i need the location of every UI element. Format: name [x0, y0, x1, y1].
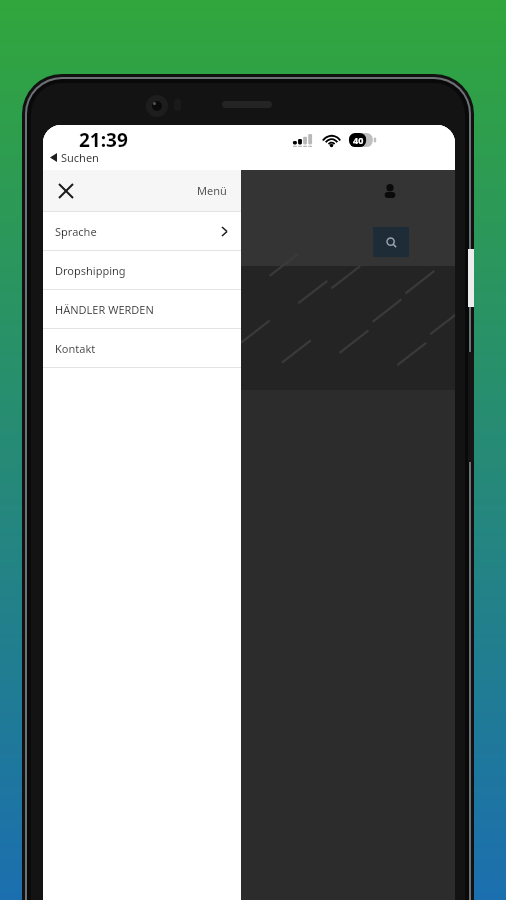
- button[interactable]: Konto: [379, 180, 401, 202]
- button[interactable]: ABSCHIED VON DER: [43, 266, 455, 390]
- staticText: Dropshipping: [55, 263, 126, 278]
- staticText: Suchen: [61, 150, 99, 165]
- staticText: ABSCHIED VON DER: [95, 304, 154, 312]
- button[interactable]: Dropshipping: [43, 251, 241, 289]
- button[interactable]: HÄNDLER WERDEN: [43, 290, 241, 328]
- staticText: Kontakt: [55, 341, 96, 356]
- staticText: Sprache: [55, 224, 97, 239]
- staticText: CREA: [123, 356, 146, 368]
- staticText: KRAFTLOSIGKEIT: [95, 314, 204, 332]
- button[interactable]: TE: [43, 402, 455, 542]
- button[interactable]: [43, 552, 455, 688]
- button[interactable]: Suchen: [373, 227, 409, 257]
- staticText: HÄNDLER WERDEN: [55, 302, 154, 317]
- staticText: Menü: [197, 183, 227, 198]
- button[interactable]: Sprache: [43, 212, 241, 250]
- button[interactable]: Menü schließen: [53, 178, 79, 204]
- staticText: 40: [353, 134, 364, 146]
- button[interactable]: Kontakt: [43, 329, 241, 367]
- button[interactable]: DE: [43, 698, 455, 846]
- staticText: 21:39: [79, 127, 128, 153]
- button[interactable]: Suchen: [50, 150, 99, 165]
